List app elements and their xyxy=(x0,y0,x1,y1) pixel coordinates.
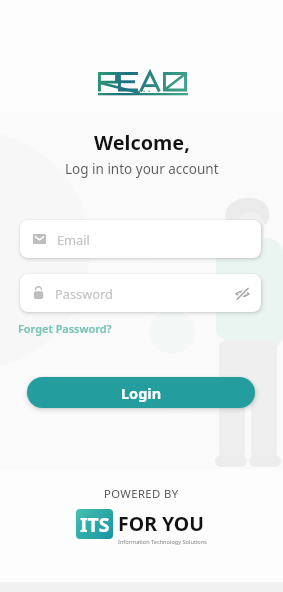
staticText: POWERED BY xyxy=(104,486,179,501)
button[interactable]: Forget Password? xyxy=(16,319,114,338)
staticText: Forget Password? xyxy=(18,321,112,336)
staticText: Welcome, xyxy=(94,129,190,156)
staticText: Log in into your account xyxy=(65,160,219,178)
staticText: FOR YOU xyxy=(118,510,204,537)
staticText: Login xyxy=(121,383,162,403)
staticText: Password xyxy=(55,285,113,302)
staticText: Information Technology Solutions xyxy=(118,538,207,546)
button[interactable]: Show password xyxy=(234,285,250,301)
staticText: Email xyxy=(57,231,90,248)
button[interactable]: Password xyxy=(20,274,261,312)
button[interactable]: Login xyxy=(27,377,255,408)
button[interactable]: Email xyxy=(20,220,261,258)
staticText: ITS xyxy=(80,511,110,538)
